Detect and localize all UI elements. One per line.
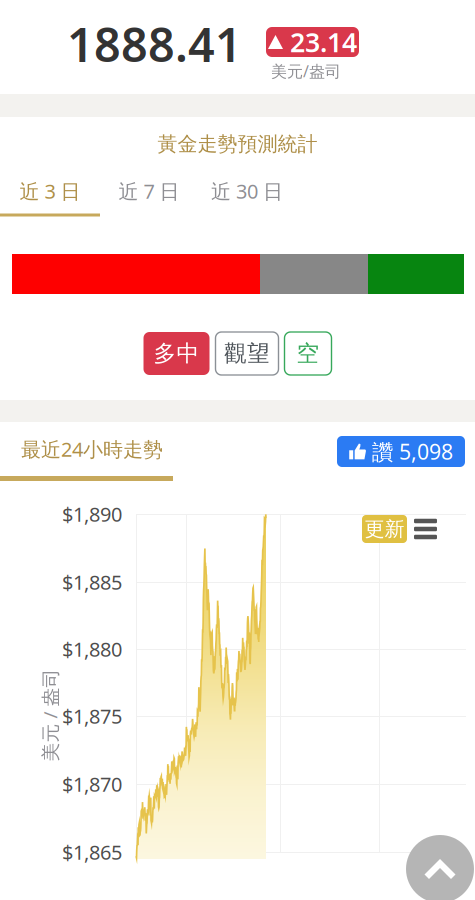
button[interactable]: 最近24小時走勢 [0,422,171,460]
staticText: 1888.41 [67,13,242,75]
staticText: $1,870 [62,771,122,797]
button[interactable]: 更新 [362,515,407,543]
button[interactable]: 近 7 日 [100,174,198,216]
button[interactable]: 近 3 日 [0,174,100,216]
button[interactable]: 讚 5,098 [337,436,465,467]
staticText: 美元 / 盎司 [3,703,96,727]
staticText: $1,880 [62,636,122,662]
staticText: $1,875 [62,703,122,729]
button[interactable]: 近 30 日 [198,174,296,216]
button[interactable]: Chart menu [414,518,437,539]
button[interactable]: 多中 [143,332,209,375]
staticText: 讚 5,098 [372,437,453,466]
staticText: 近 7 日 [118,178,179,204]
staticText: 空 [296,340,319,367]
staticText: $1,885 [62,569,122,595]
staticText: 美元/盎司 [271,60,341,82]
staticText: 最近24小時走勢 [21,436,163,462]
button[interactable]: 空 [284,332,331,375]
staticText: 觀望 [224,340,270,367]
staticText: 23.14 [290,24,357,60]
staticText: 更新 [364,517,404,541]
staticText: 近 3 日 [19,178,80,204]
button[interactable]: Scroll to top [406,835,474,900]
staticText: $1,865 [62,839,122,865]
staticText: 多中 [153,340,199,367]
staticText: 黃金走勢預測統計 [157,132,317,156]
staticText: 近 30 日 [211,178,283,204]
staticText: $1,890 [62,501,122,527]
button[interactable]: 觀望 [215,332,278,375]
